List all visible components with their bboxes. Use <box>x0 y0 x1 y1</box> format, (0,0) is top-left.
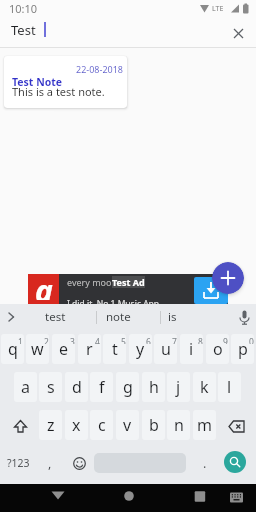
staticText: test <box>45 309 66 325</box>
button[interactable]: d <box>65 372 88 402</box>
staticText: y <box>136 338 145 360</box>
button[interactable] <box>212 262 244 294</box>
staticText: c <box>98 414 106 436</box>
staticText: This is a test note. <box>12 84 105 97</box>
button[interactable]: z <box>39 410 62 440</box>
button[interactable] <box>232 27 245 40</box>
button[interactable]: g <box>28 274 59 304</box>
staticText: 3 <box>70 336 75 344</box>
staticText: j <box>176 376 181 398</box>
staticText: g <box>123 376 133 398</box>
button[interactable]: x <box>65 410 88 440</box>
button[interactable] <box>194 277 228 304</box>
staticText: is <box>168 309 177 325</box>
button[interactable]: y <box>129 334 152 364</box>
staticText: , <box>48 455 52 472</box>
staticText: . <box>203 455 207 472</box>
button[interactable]: test <box>30 308 80 326</box>
staticText: 6 <box>146 336 151 344</box>
button[interactable]: o <box>206 334 229 364</box>
button[interactable]: 22-08-2018 <box>4 56 127 108</box>
button[interactable]: j <box>167 372 190 402</box>
staticText: s <box>47 376 55 398</box>
staticText: 5 <box>121 336 126 344</box>
staticText: a <box>21 376 30 398</box>
staticText: Test <box>11 21 36 38</box>
button[interactable]: a <box>14 372 37 402</box>
staticText: 0 <box>249 336 254 344</box>
button[interactable] <box>120 487 138 505</box>
staticText: d <box>72 376 82 398</box>
staticText: 4 <box>95 336 100 344</box>
button[interactable]: k <box>193 372 216 402</box>
button[interactable]: l <box>218 372 241 402</box>
button[interactable]: . <box>196 448 214 478</box>
button[interactable] <box>221 411 251 441</box>
staticText: z <box>47 414 55 436</box>
staticText: p <box>238 338 248 360</box>
staticText: m <box>197 414 212 436</box>
button[interactable]: g <box>116 372 139 402</box>
staticText: f <box>99 376 105 398</box>
button[interactable]: s <box>39 372 62 402</box>
button[interactable] <box>69 450 89 476</box>
staticText: 2 <box>44 336 49 344</box>
staticText: b <box>149 414 159 436</box>
button[interactable] <box>49 487 67 505</box>
button[interactable]: ?123 <box>2 448 34 478</box>
button[interactable]: n <box>167 410 190 440</box>
staticText: note <box>106 309 131 325</box>
button[interactable]: is <box>147 308 197 326</box>
staticText: k <box>200 376 209 398</box>
staticText: h <box>149 376 159 398</box>
staticText: 1 <box>18 336 23 344</box>
staticText: v <box>123 414 132 436</box>
button[interactable]: q <box>1 334 24 364</box>
staticText: Test Note <box>12 75 63 88</box>
button[interactable]: m <box>193 410 216 440</box>
staticText: 9 <box>223 336 228 344</box>
button[interactable] <box>191 487 209 505</box>
button[interactable]: c <box>90 410 113 440</box>
button[interactable]: b <box>142 410 165 440</box>
staticText: r <box>86 338 93 360</box>
button[interactable] <box>4 310 18 324</box>
button[interactable]: i <box>180 334 203 364</box>
button[interactable]: v <box>116 410 139 440</box>
staticText: q <box>8 338 18 360</box>
staticText: g <box>35 270 53 300</box>
staticText: 7 <box>172 336 177 344</box>
staticText: u <box>161 338 171 360</box>
staticText: x <box>72 414 81 436</box>
button[interactable]: r <box>78 334 101 364</box>
staticText: n <box>174 414 184 436</box>
button[interactable] <box>229 489 245 505</box>
button[interactable]: p <box>231 334 254 364</box>
button[interactable] <box>224 451 246 473</box>
staticText: I did it. No.1 Music App <box>67 298 160 309</box>
button[interactable]: t <box>103 334 126 364</box>
staticText: t <box>112 338 118 360</box>
staticText: o <box>213 338 223 360</box>
button[interactable]: note <box>93 308 143 326</box>
staticText: e <box>59 338 69 360</box>
staticText: 8 <box>198 336 203 344</box>
button[interactable] <box>6 411 34 441</box>
staticText: every moo <box>67 276 112 288</box>
staticText: LTE <box>212 4 224 14</box>
button[interactable]: h <box>142 372 165 402</box>
button[interactable] <box>237 309 252 326</box>
button[interactable]: e <box>52 334 75 364</box>
button[interactable]: u <box>154 334 177 364</box>
staticText: w <box>31 338 44 360</box>
staticText: 22-08-2018 <box>76 63 123 75</box>
button[interactable]: , <box>40 448 60 478</box>
staticText: i <box>189 338 194 360</box>
staticText: 10:10 <box>9 1 38 15</box>
staticText: ?123 <box>7 456 30 470</box>
button[interactable]: f <box>90 372 113 402</box>
button[interactable]: w <box>26 334 49 364</box>
staticText: Test Ad <box>112 276 145 288</box>
staticText: l <box>227 376 232 398</box>
